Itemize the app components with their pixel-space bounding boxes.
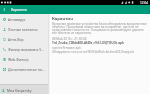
staticText: Личные контакты: [8, 27, 38, 32]
staticText: Фильтр вызовов и S...: [8, 47, 44, 52]
button[interactable]: Личные контакты: [0, 24, 48, 34]
staticText: system/firmware.apk: [52, 46, 81, 50]
button[interactable]: Back: [0, 5, 11, 14]
staticText: Карантин: [52, 16, 73, 22]
staticText: Во время проверки устройства были обнару…: [52, 22, 148, 35]
staticText: Анти-Вор: [8, 37, 24, 42]
button[interactable]: Web-Фильтр: [0, 54, 48, 64]
button[interactable]: Фильтр вызовов и S...: [0, 44, 48, 54]
button[interactable]: Дополнительные па...: [0, 64, 48, 74]
staticText: Дополнительные па...: [8, 67, 45, 72]
button[interactable]: Анти-Вор: [0, 34, 48, 44]
staticText: Антивирус: [8, 17, 26, 22]
button[interactable]: Антивирус: [0, 14, 48, 24]
staticText: Web-Фильтр: [8, 57, 29, 62]
staticText: 08 Май 2016 г. 21:30:04: [52, 37, 87, 41]
button[interactable]: Моя Kaspersky: [0, 85, 48, 94]
staticText: 12:54: [140, 1, 149, 5]
staticText: Trd_Zvuka_CIBdaBDLAf40s_r9i3 LOSJTOUOt.a…: [52, 41, 124, 45]
staticText: Моя Kaspersky: [7, 88, 32, 93]
staticText: Карантин: [11, 7, 27, 12]
staticText: Обнаружено: not-a-virus:HEUR:AdPack.Andr…: [52, 50, 135, 54]
